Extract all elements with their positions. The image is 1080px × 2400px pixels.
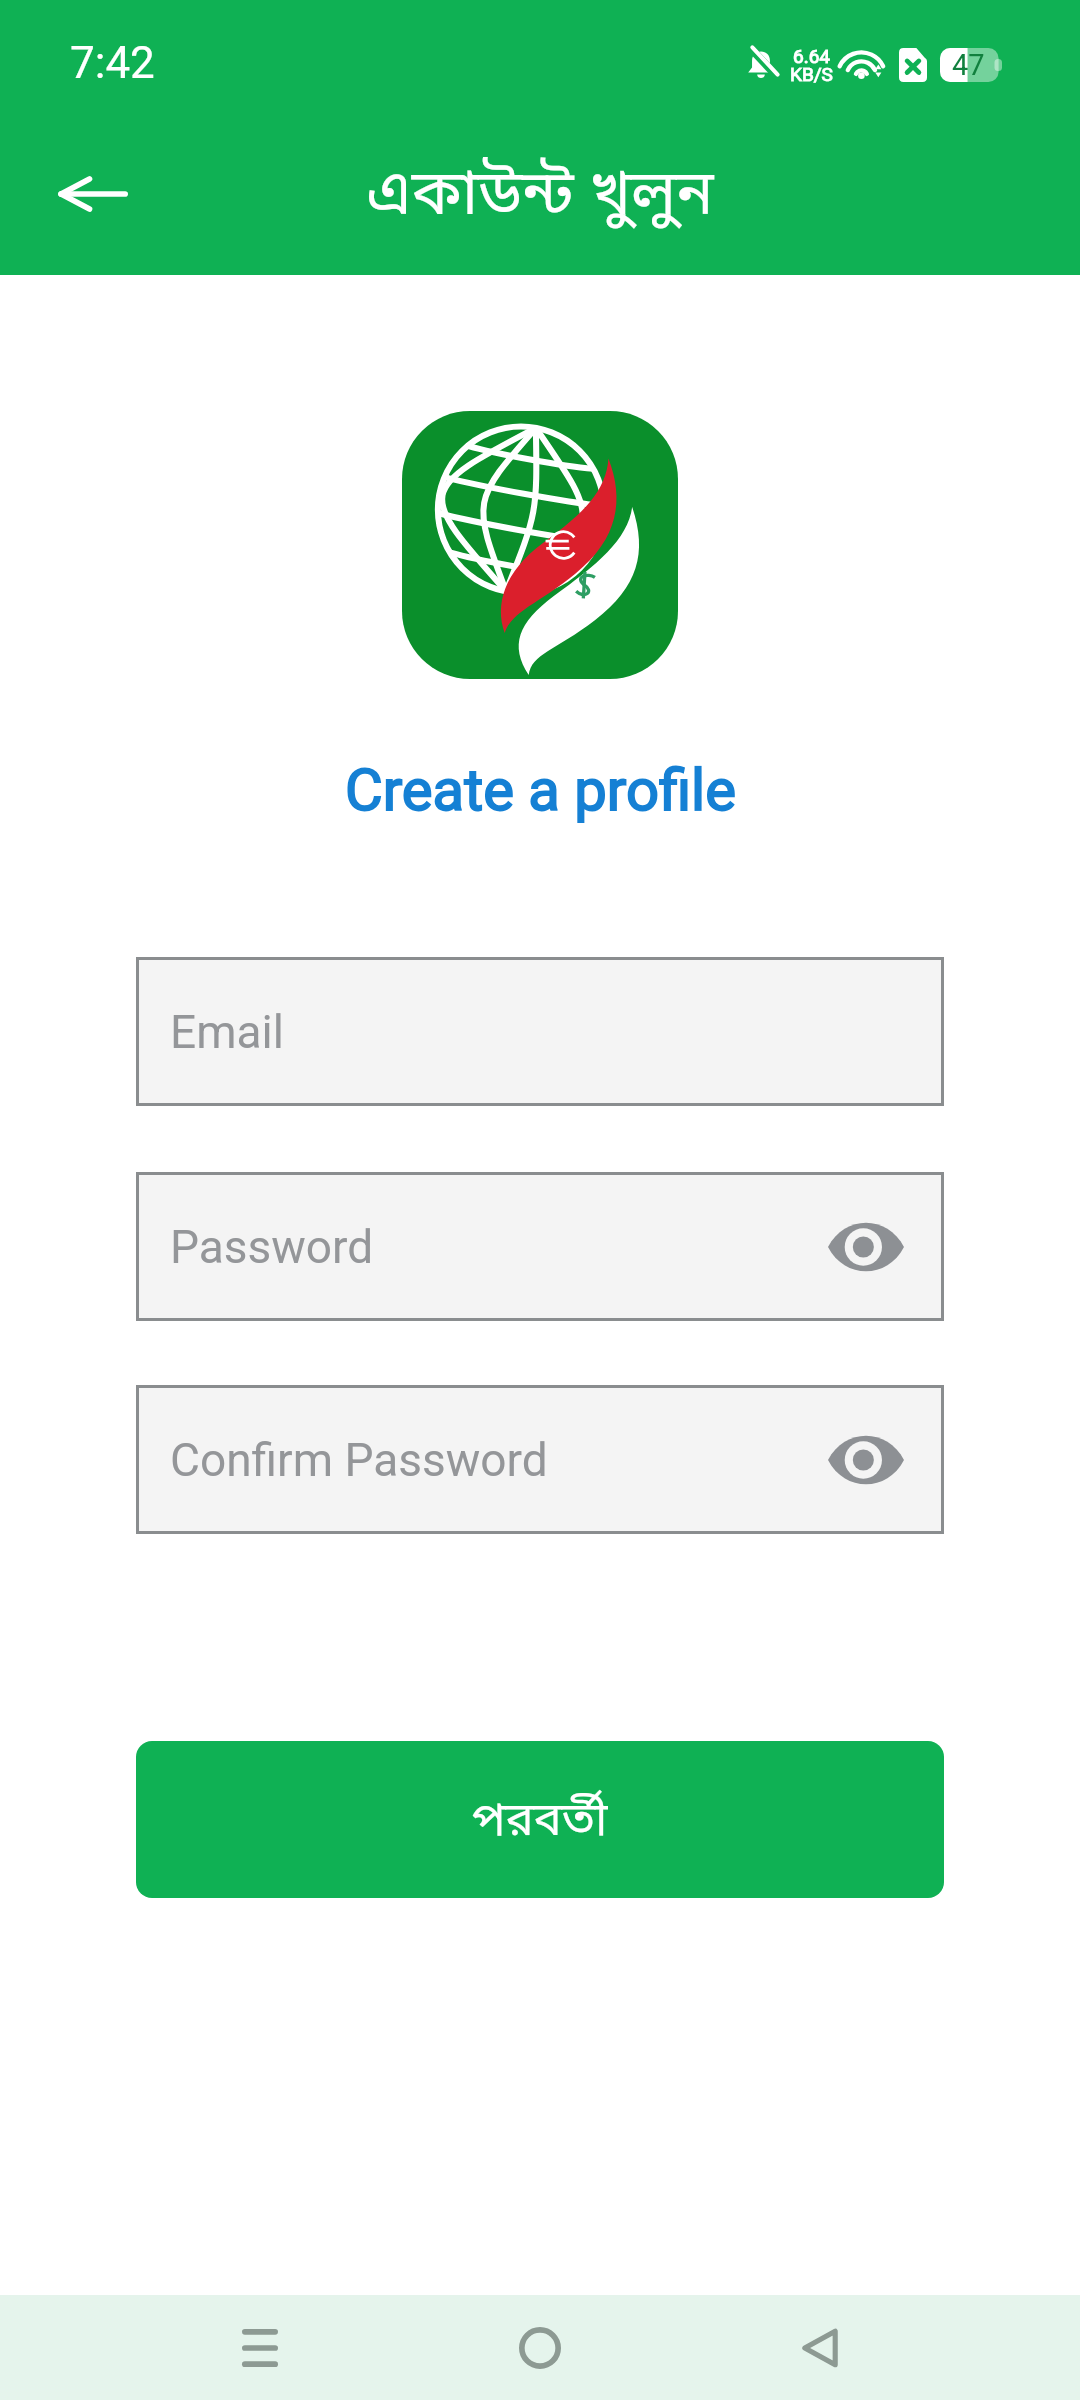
staticText: KB/S [790, 63, 833, 85]
button[interactable]: Home [470, 2295, 610, 2400]
staticText: 47 [952, 48, 985, 82]
button[interactable]: Recents [190, 2295, 330, 2400]
button[interactable]: Password [136, 1172, 944, 1321]
button[interactable]: Email [136, 957, 944, 1106]
staticText: Email [170, 1005, 284, 1059]
staticText: Create a profile [345, 756, 736, 824]
button[interactable]: পরবর্তী [136, 1741, 944, 1898]
staticText: পরবর্তী [472, 1792, 608, 1854]
staticText: একাউন্ট খুলুন [366, 157, 714, 239]
button[interactable]: Confirm Password [136, 1385, 944, 1534]
button[interactable]: Back [33, 134, 153, 254]
staticText: 7:42 [70, 37, 155, 89]
button[interactable]: Back [750, 2295, 890, 2400]
staticText: Confirm Password [170, 1433, 548, 1487]
button[interactable]: Show password [826, 1207, 906, 1287]
button[interactable]: Show password [826, 1420, 906, 1500]
staticText: 6.64 [793, 45, 831, 67]
staticText: Password [170, 1220, 374, 1274]
